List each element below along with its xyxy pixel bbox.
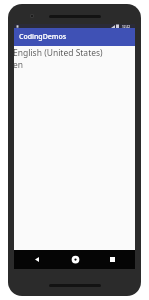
button[interactable]: English (United States) <box>14 46 135 70</box>
staticText: CodingDemos <box>19 32 67 42</box>
staticText: English (United States) <box>13 47 103 59</box>
button[interactable]: Back <box>22 250 52 269</box>
button[interactable]: CodingDemos <box>14 28 135 46</box>
staticText: en <box>13 59 24 71</box>
button[interactable]: Recent apps <box>97 250 127 269</box>
button[interactable]: Home <box>60 250 90 269</box>
staticText: 12:22 <box>122 25 131 28</box>
